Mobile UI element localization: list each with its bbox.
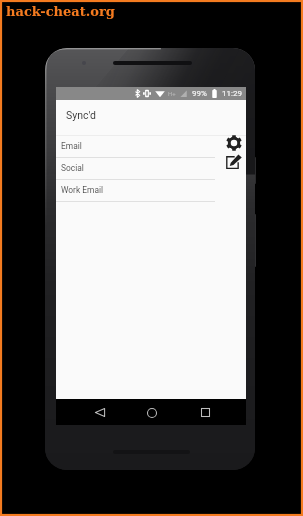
button[interactable]: Social	[56, 158, 215, 180]
button[interactable]: Back	[89, 402, 110, 423]
button[interactable]: Settings	[224, 133, 243, 152]
staticText: 99%	[192, 89, 207, 98]
staticText: 11:29	[222, 89, 242, 98]
staticText: Sync'd	[66, 109, 96, 121]
staticText: Work Email	[61, 185, 104, 195]
button[interactable]: Home	[141, 402, 162, 423]
staticText: hack-cheat.org	[6, 4, 115, 19]
staticText: Email	[61, 141, 82, 151]
button[interactable]: Recent apps	[195, 402, 216, 423]
button[interactable]: Work Email	[56, 180, 215, 202]
staticText: Social	[61, 163, 84, 173]
button[interactable]: Email	[56, 136, 215, 158]
button[interactable]: Compose	[224, 152, 243, 171]
staticText: H+	[168, 90, 176, 97]
